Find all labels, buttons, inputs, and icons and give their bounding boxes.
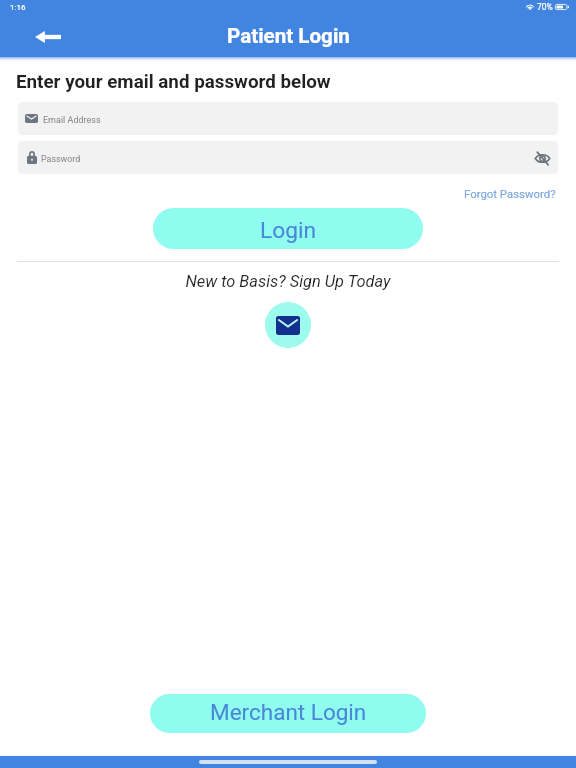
button[interactable]: Forgot Password? <box>444 187 576 204</box>
staticText: Patient Login <box>227 24 350 48</box>
button[interactable]: Email Address <box>18 102 558 135</box>
staticText: 70% <box>537 2 553 12</box>
staticText: Email Address <box>43 115 101 126</box>
staticText: Merchant Login <box>210 699 367 725</box>
button[interactable]: Password <box>18 141 558 174</box>
button[interactable]: Show password <box>533 149 551 167</box>
staticText: Enter your email and password below <box>16 71 331 93</box>
button[interactable]: Back <box>32 22 64 54</box>
staticText: 1:16 <box>10 3 26 12</box>
staticText: New to Basis? Sign Up Today <box>0 272 576 291</box>
button[interactable]: Sign up with email <box>265 302 311 348</box>
staticText: Login <box>260 217 317 244</box>
button[interactable]: Merchant Login <box>150 694 426 733</box>
staticText: Password <box>41 154 81 164</box>
button[interactable]: Login <box>153 208 423 249</box>
